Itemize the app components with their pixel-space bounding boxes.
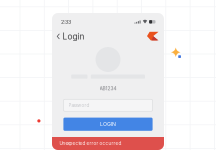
staticText: Unexpected error occurred. — [59, 141, 122, 146]
staticText: Password — [69, 103, 90, 108]
staticText: AB1234 — [99, 86, 116, 91]
staticText: 2:33 — [61, 19, 71, 25]
staticText: LOGIN — [100, 121, 116, 127]
button[interactable]: LOGIN — [52, 13, 164, 150]
button[interactable]: Brand logo — [52, 13, 164, 150]
staticText: Login — [62, 31, 84, 41]
button[interactable]: Login — [52, 13, 164, 150]
